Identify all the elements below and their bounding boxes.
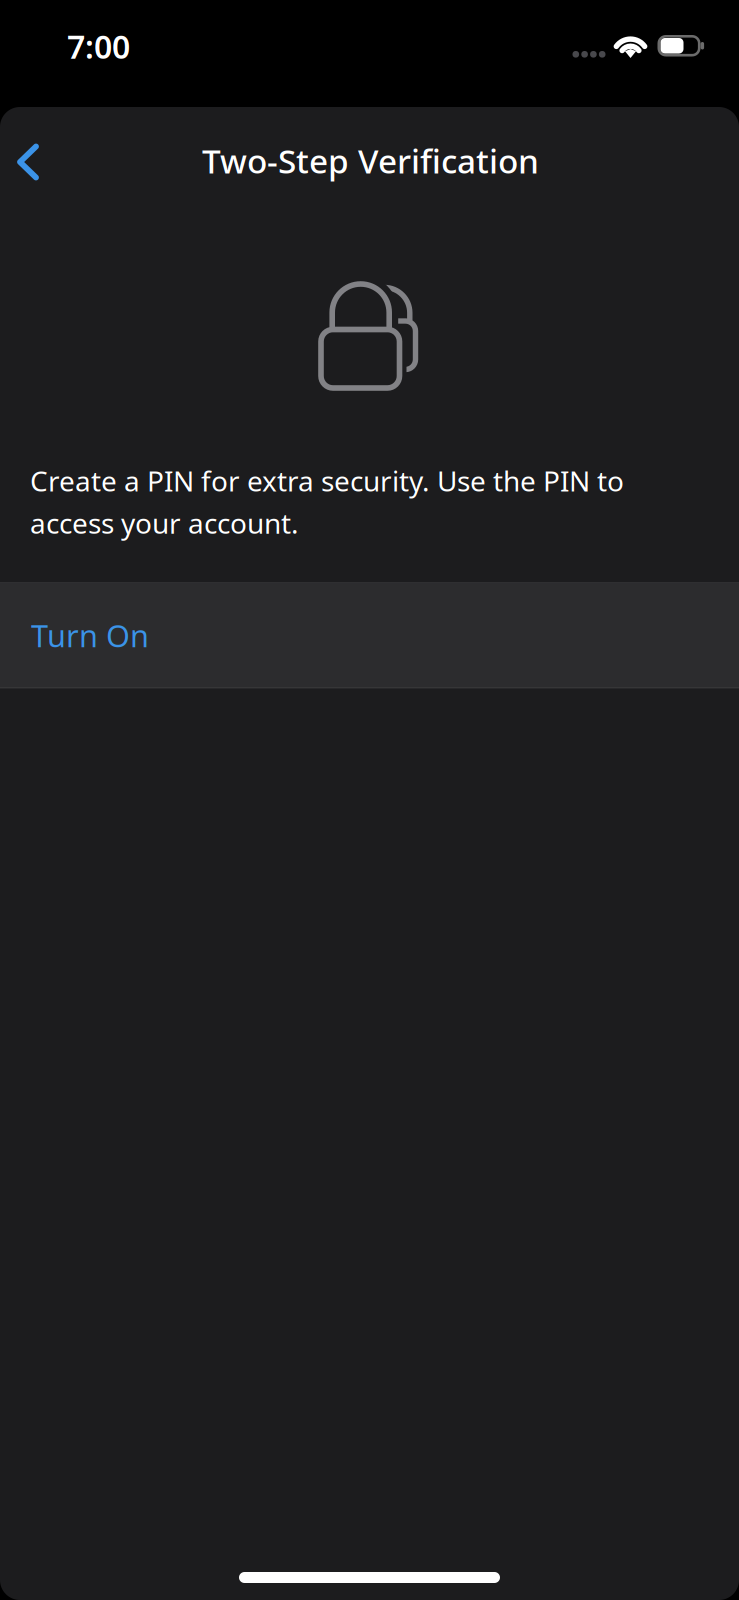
- button[interactable]: Turn On: [0, 582, 739, 688]
- staticText: Turn On: [31, 615, 149, 656]
- staticText: Create a PIN for extra security. Use the…: [30, 462, 624, 541]
- button[interactable]: Back: [0, 121, 62, 196]
- staticText: Two-Step Verification: [202, 138, 539, 183]
- staticText: 7:00: [67, 25, 130, 67]
